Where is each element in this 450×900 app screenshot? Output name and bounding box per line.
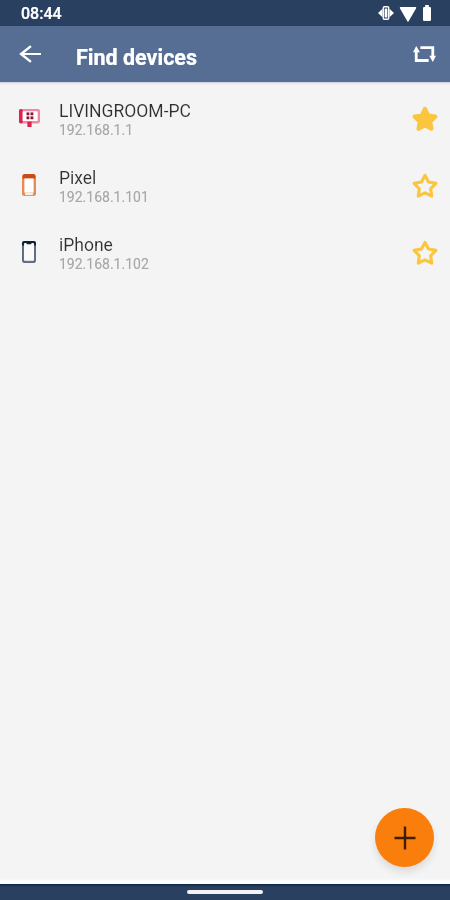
button[interactable]: Add device xyxy=(375,808,434,867)
staticText: 192.168.1.1 xyxy=(59,122,134,138)
button[interactable]: Favorite xyxy=(401,229,449,277)
button[interactable]: LIVINGROOM-PC xyxy=(0,85,450,152)
staticText: iPhone xyxy=(59,235,113,256)
staticText: Find devices xyxy=(76,45,198,70)
staticText: 08:44 xyxy=(21,4,62,23)
button[interactable]: iPhone xyxy=(0,219,450,286)
staticText: 192.168.1.101 xyxy=(59,189,149,205)
button[interactable]: Favorite xyxy=(401,95,449,143)
button[interactable]: Refresh xyxy=(400,30,448,78)
button[interactable]: Back xyxy=(6,30,54,78)
button[interactable]: Favorite xyxy=(401,162,449,210)
button[interactable]: Pixel xyxy=(0,152,450,219)
staticText: Pixel xyxy=(59,168,97,189)
staticText: LIVINGROOM-PC xyxy=(59,101,191,122)
staticText: 192.168.1.102 xyxy=(59,256,149,272)
